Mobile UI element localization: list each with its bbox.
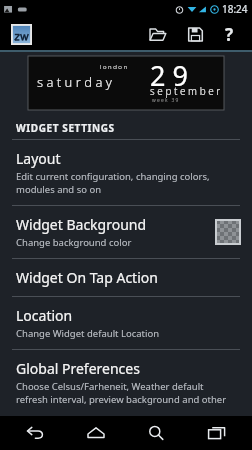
button[interactable]: Save: [176, 18, 214, 50]
button[interactable]: Open: [138, 18, 176, 50]
button[interactable]: l o n d o n: [28, 56, 224, 110]
button[interactable]: Layout: [0, 140, 252, 205]
staticText: modules and so on: [16, 183, 102, 196]
staticText: refresh interval, preview background and…: [16, 393, 227, 406]
staticText: w e e k 3 9: [152, 97, 179, 104]
staticText: Global Preferences: [16, 359, 140, 378]
staticText: Change background color: [16, 236, 132, 249]
staticText: ?: [225, 23, 234, 46]
staticText: 2 9: [150, 57, 188, 94]
button[interactable]: Home: [70, 416, 122, 450]
button[interactable]: Global Preferences: [0, 350, 252, 416]
staticText: 18:24: [222, 2, 248, 16]
staticText: WIDGET SETTINGS: [16, 121, 115, 135]
button[interactable]: Widget Background: [0, 206, 252, 258]
staticText: Choose Celsus/Farheneit, Weather default: [16, 380, 204, 393]
button[interactable]: Widget On Tap Action: [0, 259, 252, 296]
staticText: Location: [16, 306, 73, 325]
staticText: Widget Background: [16, 215, 147, 234]
staticText: Change Widget default Location: [16, 327, 160, 340]
button[interactable]: Search: [130, 416, 182, 450]
button[interactable]: Recents: [191, 416, 243, 450]
staticText: Edit current configuration, changing col…: [16, 170, 210, 183]
button[interactable]: Background color swatch: [216, 220, 240, 244]
button[interactable]: Help: [214, 18, 252, 50]
staticText: s e p t e m b e r: [150, 84, 221, 98]
button[interactable]: Location: [0, 297, 252, 349]
staticText: Widget On Tap Action: [16, 268, 158, 287]
button[interactable]: App icon: [11, 24, 32, 45]
staticText: s a t u r d a y: [37, 73, 112, 91]
staticText: l o n d o n: [100, 63, 128, 71]
staticText: Layout: [16, 149, 61, 168]
button[interactable]: Back: [9, 416, 61, 450]
